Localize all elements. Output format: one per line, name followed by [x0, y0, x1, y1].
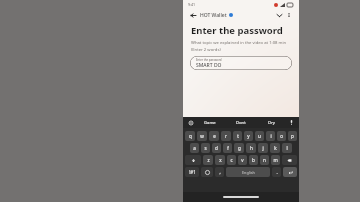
staticText: z: [207, 157, 210, 163]
staticText: .: [276, 169, 278, 175]
button[interactable]: v: [238, 155, 247, 165]
staticText: q: [189, 133, 192, 139]
staticText: n: [263, 157, 266, 163]
staticText: Game: [204, 120, 216, 126]
staticText: t: [237, 133, 239, 139]
staticText: k: [274, 145, 277, 151]
button[interactable]: Enter: [283, 167, 297, 177]
button[interactable]: h: [246, 143, 256, 153]
staticText: v: [241, 157, 244, 163]
staticText: ,: [219, 169, 221, 175]
button[interactable]: Voice input: [287, 118, 296, 127]
staticText: g: [238, 145, 241, 151]
button[interactable]: o: [277, 131, 286, 141]
button[interactable]: q: [185, 131, 195, 141]
button[interactable]: Game: [195, 117, 225, 128]
button[interactable]: ,: [215, 167, 224, 177]
staticText: h: [250, 145, 253, 151]
staticText: What topic we explained in the video at …: [191, 40, 287, 52]
staticText: Dry: [268, 120, 275, 126]
button[interactable]: f: [223, 143, 232, 153]
button[interactable]: English: [226, 167, 270, 177]
staticText: s: [204, 145, 207, 151]
button[interactable]: .: [272, 167, 281, 177]
button[interactable]: Backspace: [282, 155, 297, 165]
staticText: Enter the password: [196, 58, 222, 62]
staticText: d: [215, 145, 218, 151]
button[interactable]: m: [271, 155, 280, 165]
button[interactable]: k: [270, 143, 280, 153]
staticText: l: [286, 145, 288, 151]
button[interactable]: a: [190, 143, 199, 153]
button[interactable]: Enter the password: [190, 56, 292, 70]
staticText: o: [280, 133, 283, 139]
staticText: SMART DO: [196, 62, 222, 69]
button[interactable]: c: [227, 155, 236, 165]
staticText: !#1: [189, 169, 196, 175]
button[interactable]: n: [260, 155, 269, 165]
staticText: b: [252, 157, 255, 163]
button[interactable]: Emoji: [201, 167, 213, 177]
staticText: e: [213, 133, 216, 139]
staticText: 9:41: [188, 2, 196, 7]
button[interactable]: i: [266, 131, 275, 141]
staticText: English: [242, 170, 255, 175]
button[interactable]: Dont: [225, 117, 256, 128]
staticText: p: [291, 133, 294, 139]
button[interactable]: Dry: [256, 117, 287, 128]
button[interactable]: w: [197, 131, 207, 141]
button[interactable]: g: [234, 143, 244, 153]
button[interactable]: s: [201, 143, 210, 153]
button[interactable]: e: [209, 131, 219, 141]
staticText: Dont: [236, 120, 246, 126]
staticText: f: [227, 145, 229, 151]
staticText: y: [247, 133, 250, 139]
staticText: m: [273, 157, 278, 163]
staticText: c: [230, 157, 233, 163]
staticText: j: [262, 145, 264, 151]
button[interactable]: j: [258, 143, 268, 153]
button[interactable]: Expand: [274, 10, 284, 20]
staticText: w: [200, 133, 204, 139]
button[interactable]: Keyboard settings: [186, 118, 195, 127]
button[interactable]: Back: [188, 10, 198, 20]
staticText: x: [219, 157, 222, 163]
button[interactable]: u: [255, 131, 264, 141]
button[interactable]: p: [288, 131, 297, 141]
button[interactable]: l: [282, 143, 292, 153]
button[interactable]: z: [203, 155, 213, 165]
button[interactable]: !#1: [185, 167, 199, 177]
button[interactable]: More options: [284, 10, 294, 20]
button[interactable]: x: [215, 155, 225, 165]
button[interactable]: Shift: [185, 155, 201, 165]
button[interactable]: d: [212, 143, 221, 153]
staticText: a: [193, 145, 196, 151]
staticText: Enter the password: [191, 24, 283, 37]
staticText: i: [270, 133, 272, 139]
staticText: HOT Wallet: [200, 12, 227, 19]
button[interactable]: b: [249, 155, 258, 165]
button[interactable]: t: [233, 131, 242, 141]
button[interactable]: r: [221, 131, 231, 141]
button[interactable]: y: [244, 131, 253, 141]
staticText: r: [225, 133, 227, 139]
staticText: u: [258, 133, 261, 139]
